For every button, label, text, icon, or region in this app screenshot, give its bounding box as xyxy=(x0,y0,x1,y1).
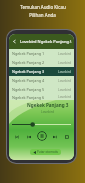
button[interactable]: Next xyxy=(51,133,58,140)
staticText: Putar otomatis xyxy=(37,150,58,154)
staticText: Ngekek Panjang 4 xyxy=(12,78,45,83)
button[interactable]: Previous xyxy=(25,133,32,140)
staticText: Ngekek Panjang 1 xyxy=(12,51,45,56)
button[interactable]: Ngekek Panjang 2 xyxy=(9,58,74,67)
staticText: Lovebird xyxy=(58,61,71,65)
staticText: Lovebird Ngekek Panjang xyxy=(20,39,69,44)
button[interactable]: Pause xyxy=(37,131,47,141)
staticText: Ngekek Panjang 2 xyxy=(12,60,45,65)
button[interactable]: Ngekek Panjang 4 xyxy=(9,76,74,85)
staticText: Ngekek Panjang 6 xyxy=(12,95,45,100)
button[interactable]: Account xyxy=(69,39,72,45)
button[interactable]: Ngekek Panjang 6 xyxy=(9,94,74,100)
staticText: Ngekek Panjang 3 xyxy=(27,102,69,108)
button[interactable]: Putar otomatis xyxy=(30,149,61,155)
button[interactable]: Stop xyxy=(63,133,70,140)
button[interactable]: Ngekek Panjang 5 xyxy=(9,85,74,94)
button[interactable]: Shuffle xyxy=(13,133,20,140)
staticText: Pilihan Anda xyxy=(29,12,56,18)
staticText: Temukan Audio Kicau xyxy=(20,4,66,10)
button[interactable]: Ngekek Panjang 1 xyxy=(9,49,74,58)
staticText: Lovebird xyxy=(58,52,71,56)
button[interactable]: Ngekek Panjang 3 xyxy=(9,67,74,76)
staticText: Lovebird xyxy=(58,79,71,83)
staticText: Lovebird xyxy=(58,88,71,92)
staticText: Lovebird xyxy=(58,70,71,74)
staticText: Ngekek Panjang 5 xyxy=(12,87,45,92)
staticText: Ngekek Panjang 3 xyxy=(12,69,45,74)
staticText: Lovebird xyxy=(41,110,54,114)
button[interactable]: Back xyxy=(11,38,18,45)
staticText: Lovebird xyxy=(58,95,71,99)
